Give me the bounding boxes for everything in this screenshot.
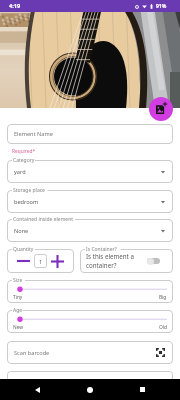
button[interactable]: Size slider — [13, 285, 167, 295]
button[interactable]: Decrease quantity — [15, 251, 32, 271]
staticText: Size — [13, 277, 23, 284]
button[interactable]: Age slider — [13, 315, 167, 325]
staticText: bedroom — [14, 198, 39, 206]
staticText: None — [14, 227, 29, 235]
staticText: Element Name — [14, 130, 53, 138]
button[interactable]: Home — [81, 379, 99, 400]
staticText: Required* — [12, 148, 36, 155]
button[interactable]: Is this element a container? — [80, 249, 173, 273]
staticText: Age — [13, 307, 23, 314]
button[interactable]: Element Name — [7, 124, 173, 144]
staticText: yard — [14, 168, 26, 176]
button[interactable]: Scan barcode — [7, 341, 173, 364]
button[interactable]: Back — [28, 379, 46, 400]
button[interactable]: Recents — [133, 379, 151, 400]
staticText: Is this element a container? — [86, 252, 145, 270]
staticText: 4:19 — [9, 2, 21, 10]
button[interactable]: bedroom — [7, 190, 173, 213]
button[interactable]: yard — [7, 160, 173, 183]
staticText: Is Container? — [86, 246, 117, 253]
staticText: 91% — [156, 3, 167, 10]
staticText: Storage place — [13, 187, 45, 194]
other: Expand — [161, 170, 165, 174]
staticText: Scan barcode — [14, 349, 50, 357]
staticText: New — [13, 324, 24, 331]
staticText: Tiny — [13, 294, 23, 301]
staticText: 1 — [39, 258, 43, 265]
staticText: Quantity — [13, 246, 34, 253]
button[interactable]: Add photo — [149, 97, 173, 121]
other: Expand — [161, 229, 165, 233]
staticText: Contained inside element — [13, 216, 74, 223]
staticText: Big — [159, 294, 167, 301]
button[interactable]: Increase quantity — [49, 251, 66, 271]
staticText: Old — [159, 324, 167, 331]
other: Scan barcode — [156, 348, 165, 357]
button[interactable]: None — [7, 219, 173, 242]
staticText: Category — [13, 157, 35, 164]
other: Expand — [161, 200, 165, 204]
